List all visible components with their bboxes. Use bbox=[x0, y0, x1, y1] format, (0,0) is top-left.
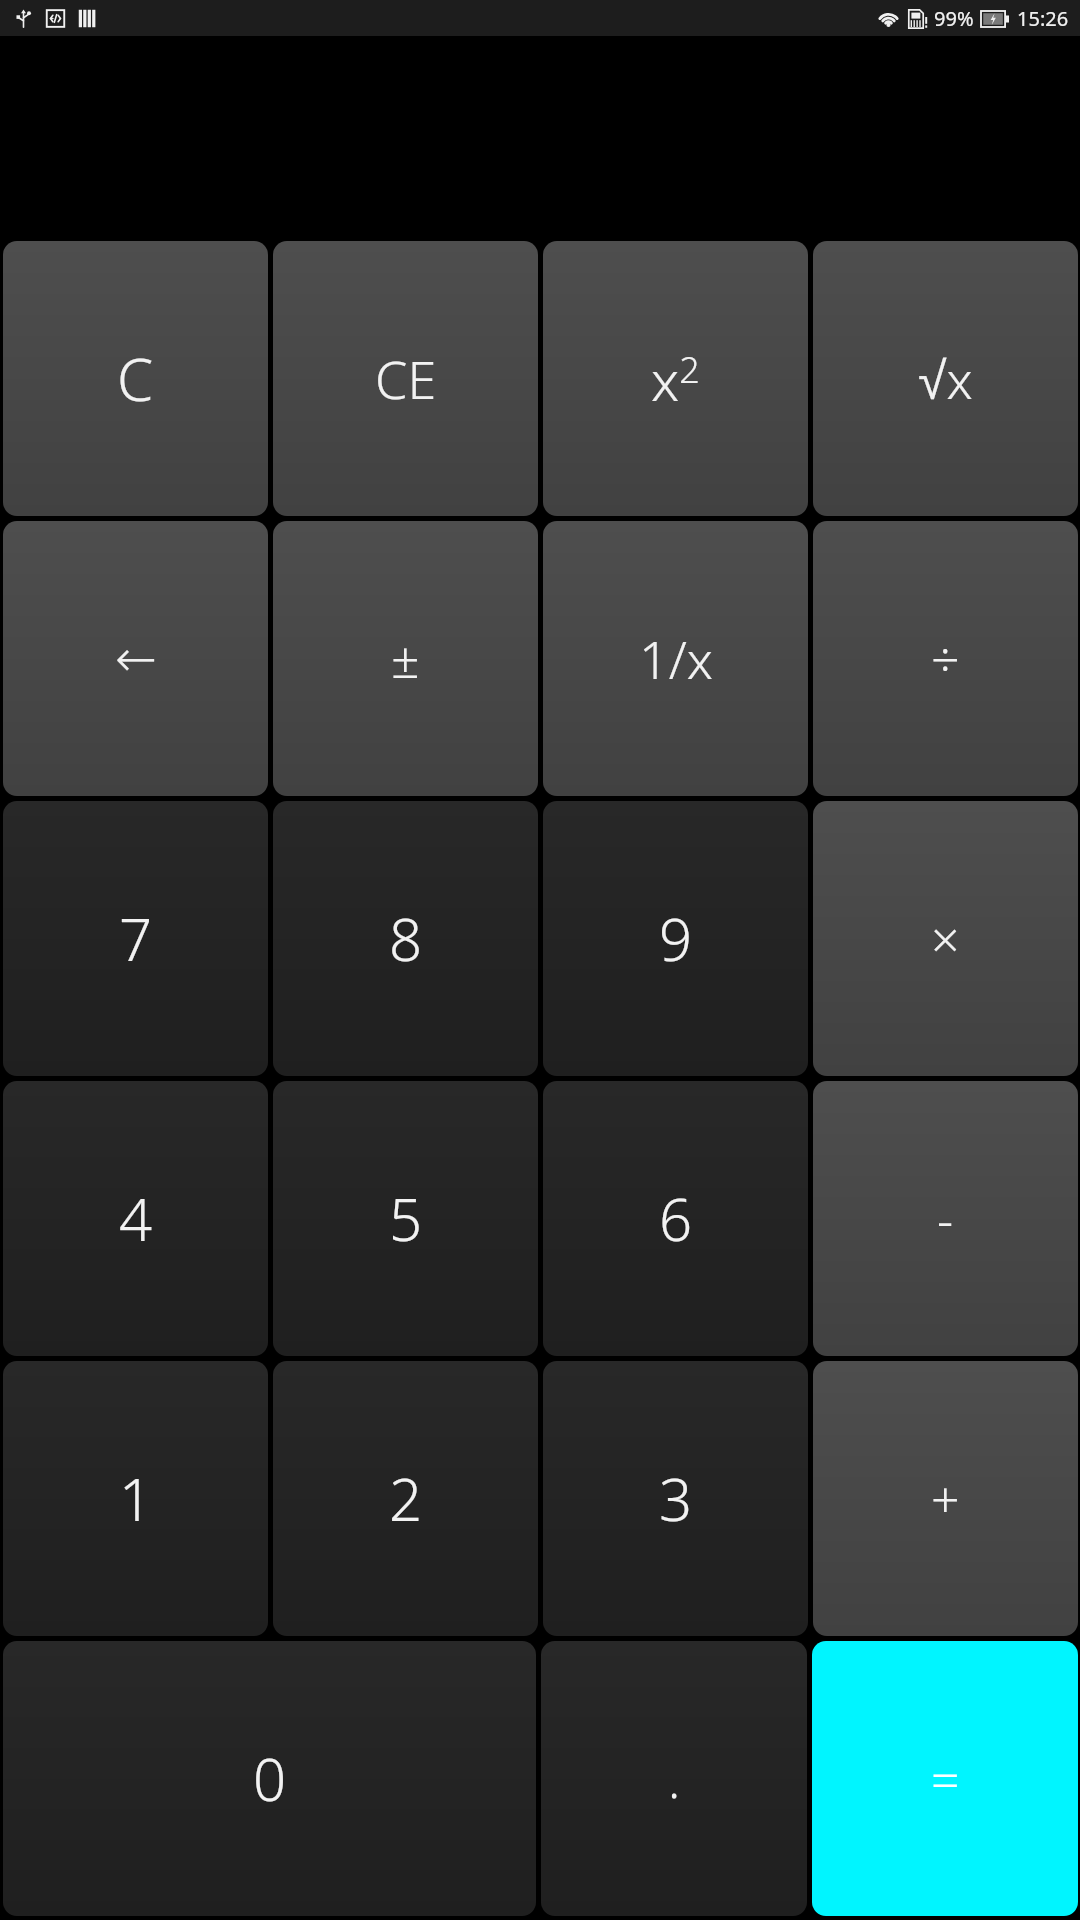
staticText: 99% bbox=[934, 5, 974, 32]
staticText: 5 bbox=[389, 1179, 423, 1258]
button[interactable]: 6 bbox=[543, 1081, 808, 1356]
staticText: 7 bbox=[119, 899, 153, 978]
staticText: . bbox=[668, 1745, 681, 1813]
staticText: + bbox=[931, 1465, 960, 1533]
staticText: √x bbox=[918, 343, 973, 414]
button[interactable]: CE bbox=[273, 241, 538, 516]
button[interactable]: ÷ bbox=[813, 521, 1078, 796]
staticText: × bbox=[931, 905, 960, 973]
button[interactable]: - bbox=[813, 1081, 1078, 1356]
staticText: CE bbox=[375, 343, 437, 414]
staticText: x2 bbox=[651, 341, 700, 417]
staticText: - bbox=[937, 1185, 954, 1253]
staticText: 3 bbox=[659, 1459, 693, 1538]
button[interactable]: 7 bbox=[3, 801, 268, 1076]
button[interactable]: = bbox=[812, 1641, 1078, 1916]
button[interactable]: x2 bbox=[543, 241, 808, 516]
staticText: ± bbox=[391, 625, 420, 693]
button[interactable]: 3 bbox=[543, 1361, 808, 1636]
staticText: 1/x bbox=[639, 623, 713, 694]
button[interactable]: + bbox=[813, 1361, 1078, 1636]
button[interactable]: 0 bbox=[3, 1641, 536, 1916]
button[interactable]: × bbox=[813, 801, 1078, 1076]
button[interactable]: 4 bbox=[3, 1081, 268, 1356]
button[interactable]: Plus minus sign bbox=[273, 521, 538, 796]
staticText: 8 bbox=[389, 899, 423, 978]
staticText: 4 bbox=[119, 1179, 153, 1258]
staticText: 6 bbox=[659, 1179, 693, 1258]
button[interactable]: Square root bbox=[813, 241, 1078, 516]
staticText: ÷ bbox=[931, 625, 960, 693]
staticText: = bbox=[931, 1745, 960, 1813]
staticText: 2 bbox=[389, 1459, 423, 1538]
button[interactable]: 1/x bbox=[543, 521, 808, 796]
staticText: 9 bbox=[659, 899, 693, 978]
staticText: 0 bbox=[253, 1739, 287, 1818]
button[interactable]: 1 bbox=[3, 1361, 268, 1636]
staticText: C bbox=[117, 339, 154, 418]
staticText: 1 bbox=[119, 1459, 153, 1538]
staticText: ← bbox=[115, 630, 157, 688]
button[interactable]: 2 bbox=[273, 1361, 538, 1636]
button[interactable]: C bbox=[3, 241, 268, 516]
button[interactable]: 5 bbox=[273, 1081, 538, 1356]
button[interactable]: . bbox=[541, 1641, 807, 1916]
button[interactable]: Backspace bbox=[3, 521, 268, 796]
staticText: 15:26 bbox=[1017, 5, 1069, 32]
button[interactable]: 9 bbox=[543, 801, 808, 1076]
button[interactable]: 8 bbox=[273, 801, 538, 1076]
